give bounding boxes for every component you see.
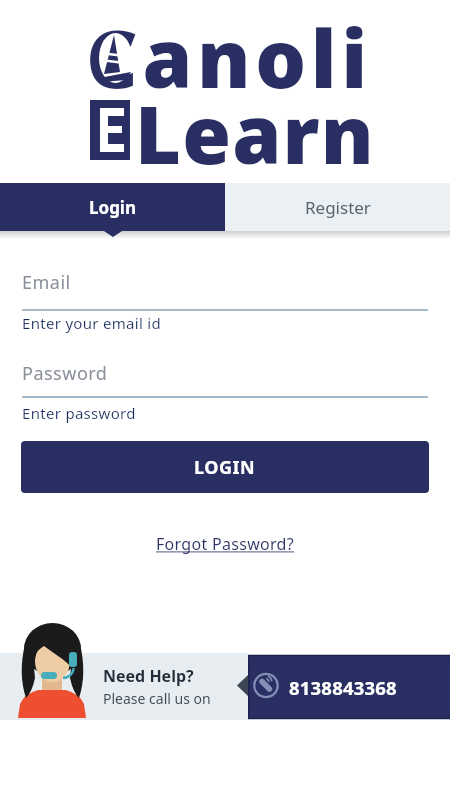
- staticText: Email: [22, 270, 71, 295]
- button[interactable]: [22, 268, 428, 332]
- button[interactable]: [22, 359, 428, 423]
- button[interactable]: LOGIN: [21, 441, 429, 493]
- button[interactable]: Forgot Password?: [156, 533, 295, 555]
- button[interactable]: Login: [0, 183, 225, 231]
- staticText: Enter password: [22, 403, 136, 423]
- staticText: LOGIN: [194, 455, 256, 480]
- button[interactable]: 8138843368: [248, 655, 450, 719]
- staticText: Please call us on: [103, 689, 211, 708]
- button[interactable]: Register: [225, 183, 450, 231]
- staticText: 8138843368: [289, 675, 397, 700]
- staticText: Learn: [135, 80, 375, 188]
- staticText: Register: [305, 196, 371, 219]
- staticText: Need Help?: [103, 665, 194, 687]
- staticText: Login: [89, 196, 137, 219]
- staticText: Enter your email id: [22, 313, 162, 333]
- staticText: Canoli: [86, 2, 372, 111]
- staticText: Password: [22, 361, 108, 386]
